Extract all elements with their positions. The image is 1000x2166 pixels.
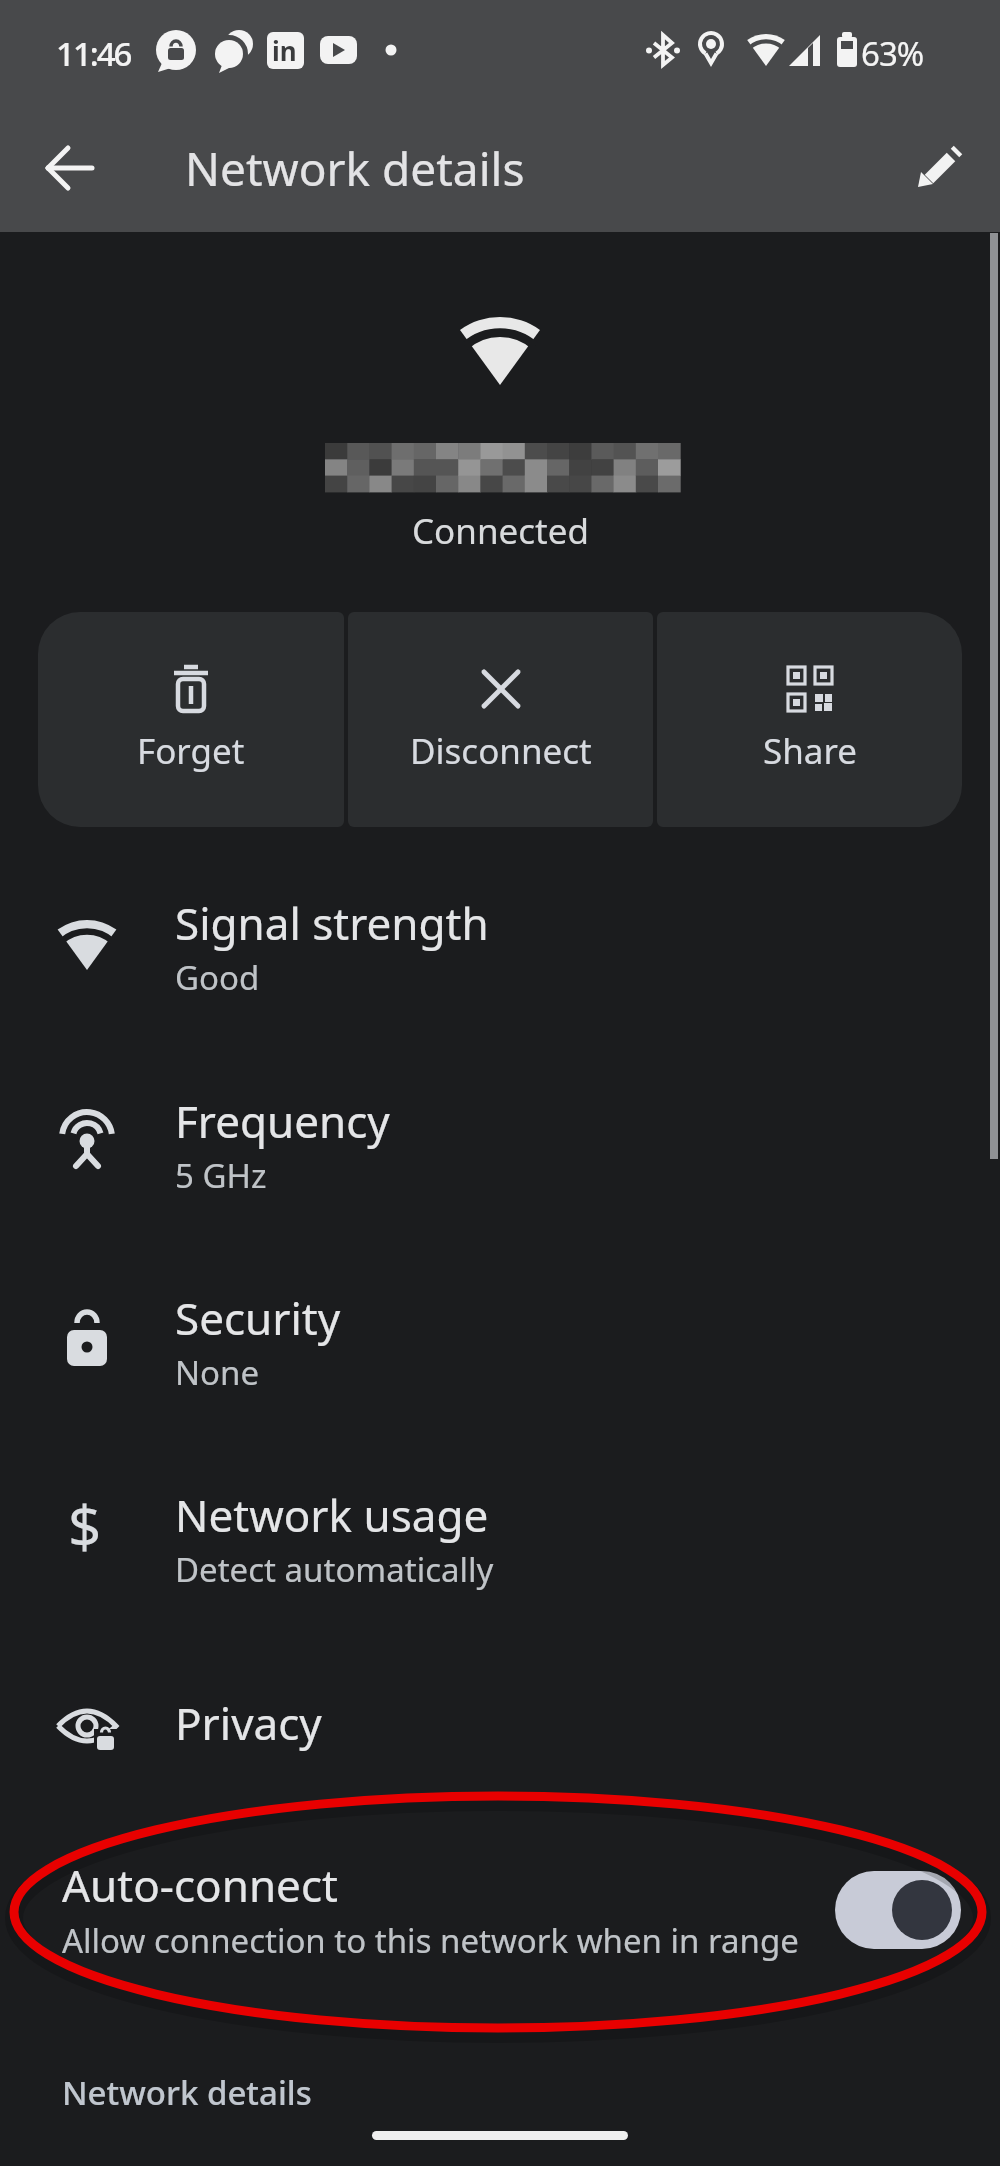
staticText: $ xyxy=(68,1486,102,1565)
staticText: Network details xyxy=(62,2070,312,2115)
button[interactable]: Privacy xyxy=(0,1675,1000,1785)
button[interactable]: Signal strength xyxy=(0,875,1000,1035)
staticText: 63% xyxy=(861,31,924,76)
button[interactable] xyxy=(895,123,985,213)
staticText: Allow connection to this network when in… xyxy=(62,1918,799,1963)
button[interactable]: Auto-connect xyxy=(0,1835,1000,1985)
staticText: Disconnect xyxy=(410,727,592,775)
staticText: Signal strength xyxy=(175,893,489,953)
staticText: Good xyxy=(175,955,260,1000)
button[interactable]: Network usage xyxy=(0,1467,1000,1627)
staticText: Network details xyxy=(185,137,525,200)
staticText: Connected xyxy=(412,507,589,555)
staticText: Privacy xyxy=(175,1693,322,1753)
staticText: in xyxy=(272,33,297,68)
button[interactable]: Security xyxy=(0,1270,1000,1430)
staticText: Frequency xyxy=(175,1091,390,1151)
button[interactable]: Share xyxy=(657,612,962,827)
button[interactable]: Forget xyxy=(38,612,344,827)
button[interactable]: Frequency xyxy=(0,1073,1000,1233)
staticText: 11:46 xyxy=(56,31,131,76)
staticText: Forget xyxy=(137,727,245,775)
staticText: Network usage xyxy=(175,1485,489,1545)
staticText: Detect automatically xyxy=(175,1547,494,1592)
staticText: Share xyxy=(763,727,857,775)
staticText: Security xyxy=(175,1288,341,1348)
staticText: 5 GHz xyxy=(175,1153,267,1198)
button[interactable]: Disconnect xyxy=(348,612,653,827)
staticText: None xyxy=(175,1350,260,1395)
button[interactable] xyxy=(25,123,115,213)
staticText: Auto-connect xyxy=(62,1855,338,1915)
